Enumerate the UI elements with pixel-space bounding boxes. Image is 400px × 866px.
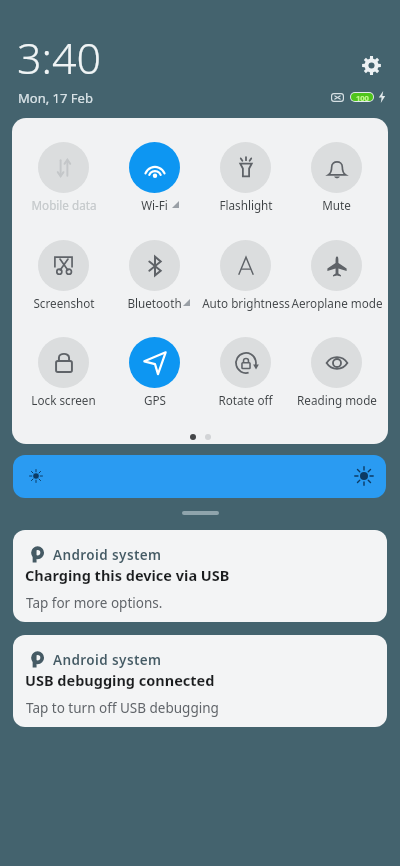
staticText: Auto brightness bbox=[202, 295, 290, 311]
button[interactable]: Aeroplane mode bbox=[291, 240, 382, 312]
staticText: Tap for more options. bbox=[26, 594, 163, 612]
staticText: Reading mode bbox=[297, 392, 377, 408]
button[interactable]: Screenshot bbox=[18, 240, 109, 312]
staticText: Aeroplane mode bbox=[291, 295, 382, 311]
staticText: Screenshot bbox=[33, 295, 95, 311]
staticText: Rotate off bbox=[218, 392, 273, 408]
button[interactable]: Mute bbox=[291, 142, 382, 214]
staticText: Mon, 17 Feb bbox=[18, 89, 93, 107]
staticText: Tap to turn off USB debugging bbox=[26, 699, 219, 717]
staticText: Android system bbox=[53, 651, 162, 669]
staticText: Mute bbox=[322, 197, 351, 213]
staticText: Bluetooth bbox=[127, 295, 182, 311]
button[interactable]: Android system bbox=[13, 530, 387, 622]
button[interactable]: Mobile data bbox=[18, 142, 109, 214]
button[interactable]: Bluetooth bbox=[109, 240, 200, 312]
staticText: 100 bbox=[356, 93, 369, 101]
staticText: GPS bbox=[144, 392, 166, 408]
button[interactable]: Flashlight bbox=[200, 142, 291, 214]
button[interactable]: Wi-Fi bbox=[109, 142, 200, 214]
button[interactable]: Settings bbox=[359, 53, 383, 77]
button[interactable]: Lock screen bbox=[18, 337, 109, 409]
button[interactable]: GPS bbox=[109, 337, 200, 409]
staticText: Android system bbox=[53, 546, 162, 564]
staticText: Charging this device via USB bbox=[25, 565, 230, 585]
staticText: USB debugging connected bbox=[25, 670, 215, 690]
staticText: Flashlight bbox=[219, 197, 273, 213]
staticText: Wi-Fi bbox=[141, 197, 168, 213]
staticText: Mobile data bbox=[31, 197, 97, 213]
button[interactable]: Auto brightness bbox=[200, 240, 291, 312]
button[interactable]: Reading mode bbox=[291, 337, 382, 409]
button[interactable]: Rotate off bbox=[200, 337, 291, 409]
staticText: 3:40 bbox=[17, 28, 102, 87]
button[interactable]: Android system bbox=[13, 635, 387, 727]
button[interactable]: Brightness bbox=[13, 455, 386, 498]
staticText: Lock screen bbox=[31, 392, 96, 408]
